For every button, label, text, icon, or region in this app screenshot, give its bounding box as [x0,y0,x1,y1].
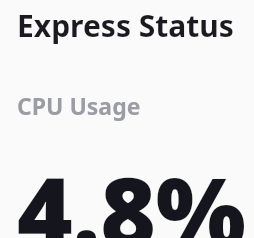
staticText: CPU Usage [17,90,141,121]
staticText: Express Status [17,5,234,46]
staticText: 4.8% [17,145,246,238]
